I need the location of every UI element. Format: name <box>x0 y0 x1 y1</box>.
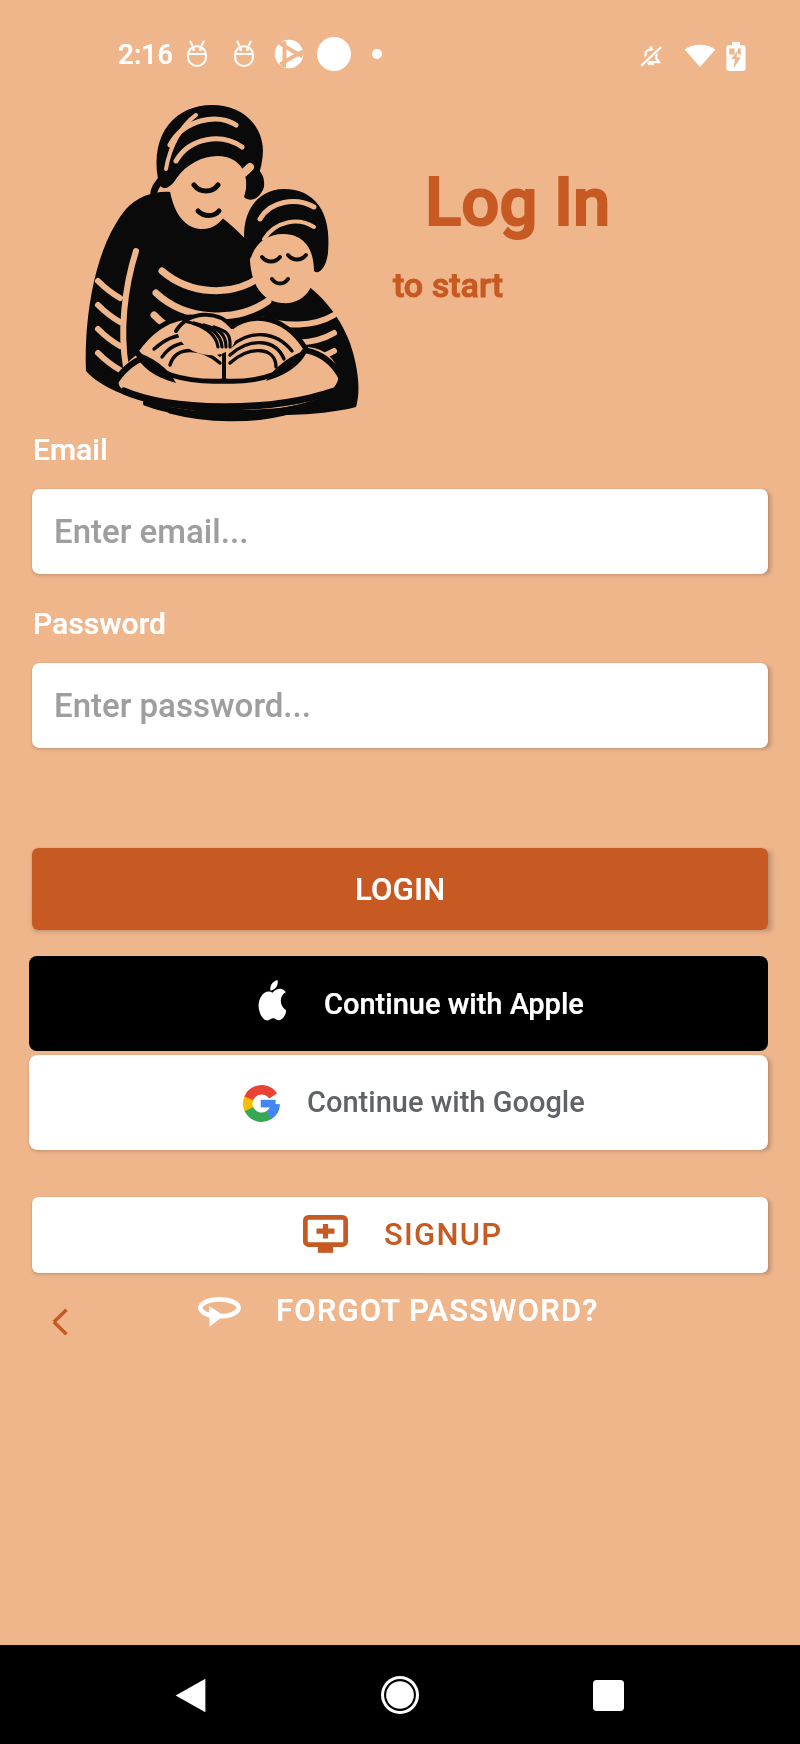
staticText: Password <box>33 606 166 641</box>
staticText: FORGOT PASSWORD? <box>276 1292 599 1328</box>
staticText: 2:16 <box>118 38 174 71</box>
staticText: Enter password... <box>54 686 311 725</box>
staticText: Continue with Apple <box>324 987 584 1021</box>
button[interactable]: Home <box>340 1650 460 1740</box>
button[interactable]: Back <box>130 1650 250 1740</box>
staticText: Enter email... <box>54 512 249 551</box>
staticText: SIGNUP <box>384 1216 503 1252</box>
staticText: LOGIN <box>355 871 446 907</box>
button[interactable]: Continue with Google <box>29 1055 768 1150</box>
button[interactable]: SIGNUP <box>32 1197 768 1273</box>
button[interactable]: Enter email... <box>32 489 768 574</box>
staticText: Email <box>33 432 108 467</box>
staticText: to start <box>393 265 504 305</box>
staticText: Log In <box>425 163 611 242</box>
button[interactable]: FORGOT PASSWORD? <box>180 1286 612 1338</box>
button[interactable]: Continue with Apple <box>29 956 768 1051</box>
button[interactable]: Enter password... <box>32 663 768 748</box>
button[interactable]: LOGIN <box>32 848 768 930</box>
button[interactable]: Recent apps <box>548 1650 668 1740</box>
staticText: Continue with Google <box>307 1085 585 1119</box>
button[interactable]: Back <box>28 1290 92 1354</box>
